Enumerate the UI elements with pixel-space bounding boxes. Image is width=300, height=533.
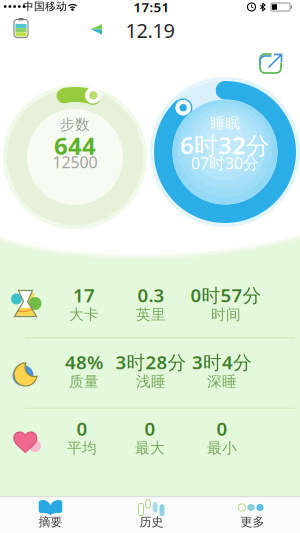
- staticText: 17: [73, 283, 95, 307]
- staticText: 中国移动: [23, 0, 67, 13]
- staticText: 时间: [211, 305, 241, 323]
- staticText: 12.19: [125, 17, 174, 43]
- staticText: 3时4分: [192, 350, 252, 374]
- staticText: 0.3: [137, 283, 164, 307]
- staticText: 最大: [135, 439, 165, 457]
- staticText: 摘要: [38, 515, 62, 529]
- staticText: 17:51: [133, 0, 169, 16]
- staticText: 48%: [65, 350, 103, 374]
- staticText: 0: [216, 416, 227, 441]
- button[interactable]: 分享: [0, 0, 300, 533]
- staticText: 6时32分: [180, 129, 270, 161]
- staticText: 3时28分: [115, 350, 186, 374]
- staticText: 大卡: [69, 305, 99, 323]
- staticText: 644: [54, 130, 96, 161]
- button[interactable]: 更多: [0, 0, 300, 533]
- staticText: 平均: [67, 439, 97, 457]
- staticText: 英里: [136, 305, 166, 323]
- staticText: 深睡: [207, 372, 237, 390]
- staticText: 最小: [207, 439, 237, 457]
- staticText: 12500: [52, 151, 97, 173]
- staticText: 0时57分: [190, 283, 261, 307]
- button[interactable]: 历史: [0, 0, 300, 533]
- staticText: 0: [76, 416, 87, 441]
- staticText: 浅睡: [136, 372, 166, 390]
- button[interactable]: 前一天: [0, 0, 300, 533]
- staticText: 质量: [69, 372, 99, 390]
- staticText: 0: [144, 416, 155, 441]
- button[interactable]: 摘要: [0, 0, 300, 533]
- staticText: 07时30分: [191, 152, 259, 174]
- staticText: 步数: [60, 115, 90, 133]
- staticText: 历史: [139, 515, 163, 529]
- staticText: 更多: [240, 515, 264, 529]
- staticText: 睡眠: [210, 114, 240, 132]
